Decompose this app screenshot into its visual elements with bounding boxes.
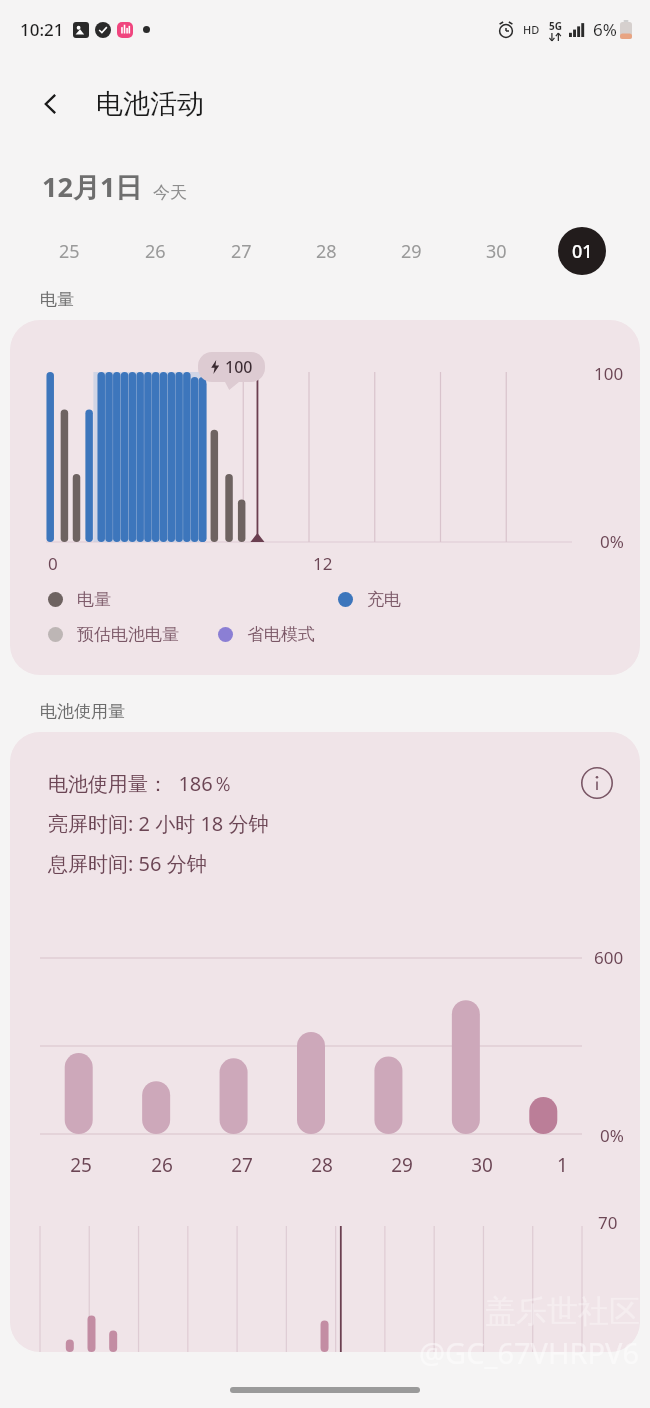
staticText: 26 bbox=[151, 1152, 173, 1178]
button[interactable]: 30 bbox=[454, 227, 539, 275]
staticText: 27 bbox=[231, 239, 252, 264]
staticText: 10:21 bbox=[20, 18, 64, 41]
staticText: 省电模式 bbox=[247, 624, 315, 645]
button[interactable]: 26 bbox=[112, 227, 198, 275]
button[interactable]: Info bbox=[574, 760, 620, 806]
button[interactable]: 电池使用量： 186％ bbox=[10, 732, 640, 1352]
staticText: 电量 bbox=[40, 289, 74, 310]
button[interactable]: Back bbox=[28, 81, 74, 127]
staticText: 30 bbox=[471, 1152, 493, 1178]
staticText: 12月1日 bbox=[42, 168, 143, 205]
staticText: 息屏时间: 56 分钟 bbox=[48, 850, 207, 877]
staticText: 1 bbox=[557, 1152, 568, 1178]
staticText: 01 bbox=[572, 239, 593, 264]
staticText: 25 bbox=[59, 239, 80, 264]
staticText: 30 bbox=[486, 239, 507, 264]
staticText: 0% bbox=[600, 530, 624, 553]
staticText: 6% bbox=[593, 18, 617, 41]
button[interactable]: 100 bbox=[10, 320, 640, 675]
staticText: 25 bbox=[70, 1152, 92, 1178]
staticText: 26 bbox=[145, 239, 166, 264]
staticText: 电量 bbox=[77, 589, 111, 610]
button[interactable]: 01 bbox=[539, 227, 624, 275]
staticText: 28 bbox=[311, 1152, 333, 1178]
staticText: 29 bbox=[401, 239, 422, 264]
staticText: 100 bbox=[225, 356, 253, 378]
button[interactable]: 27 bbox=[198, 227, 284, 275]
staticText: HD bbox=[523, 22, 540, 37]
staticText: 0 bbox=[48, 552, 58, 575]
staticText: 28 bbox=[316, 239, 337, 264]
staticText: 电池活动 bbox=[96, 87, 204, 121]
staticText: 预估电池电量 bbox=[77, 624, 179, 645]
staticText: 盖乐世社区 bbox=[485, 1292, 640, 1331]
staticText: 充电 bbox=[367, 589, 401, 610]
staticText: 70 bbox=[598, 1211, 618, 1234]
button[interactable]: 29 bbox=[369, 227, 454, 275]
staticText: 100 bbox=[594, 362, 624, 385]
button[interactable]: 25 bbox=[26, 227, 112, 275]
staticText: 电池使用量： 186％ bbox=[48, 770, 233, 797]
staticText: 600 bbox=[594, 946, 624, 969]
staticText: 12 bbox=[313, 552, 333, 575]
staticText: 今天 bbox=[153, 182, 187, 203]
staticText: 0% bbox=[600, 1124, 624, 1147]
staticText: 5G bbox=[549, 19, 562, 33]
staticText: @GC_67VHRPV6 bbox=[419, 1333, 640, 1372]
staticText: 27 bbox=[231, 1152, 253, 1178]
staticText: 29 bbox=[391, 1152, 413, 1178]
button[interactable]: 28 bbox=[284, 227, 369, 275]
staticText: 电池使用量 bbox=[40, 701, 125, 722]
staticText: 亮屏时间: 2 小时 18 分钟 bbox=[48, 810, 269, 837]
